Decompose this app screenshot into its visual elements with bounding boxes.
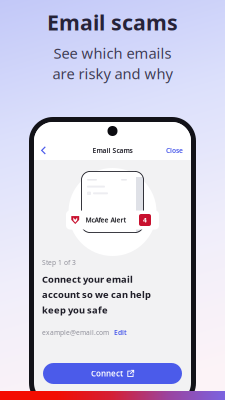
staticText: Close <box>166 146 183 155</box>
staticText: Edit <box>114 328 127 337</box>
staticText: See which emails <box>53 43 171 63</box>
staticText: Connect your email <box>42 273 133 285</box>
staticText: example@email.com <box>42 328 109 337</box>
button[interactable]: Connect <box>43 363 182 384</box>
staticText: McAfee Alert <box>85 216 126 224</box>
staticText: Email Scams <box>92 146 132 155</box>
button[interactable]: Close <box>159 144 191 157</box>
button[interactable]: Edit <box>109 326 127 339</box>
staticText: account so we can help <box>42 288 151 301</box>
staticText: Email scams <box>47 8 178 36</box>
staticText: Connect <box>91 368 123 379</box>
staticText: are risky and why <box>52 64 172 83</box>
staticText: keep you safe <box>42 304 108 316</box>
staticText: Step 1 of 3 <box>42 258 76 267</box>
button[interactable]: Back <box>34 144 53 157</box>
staticText: 4 <box>143 216 147 224</box>
